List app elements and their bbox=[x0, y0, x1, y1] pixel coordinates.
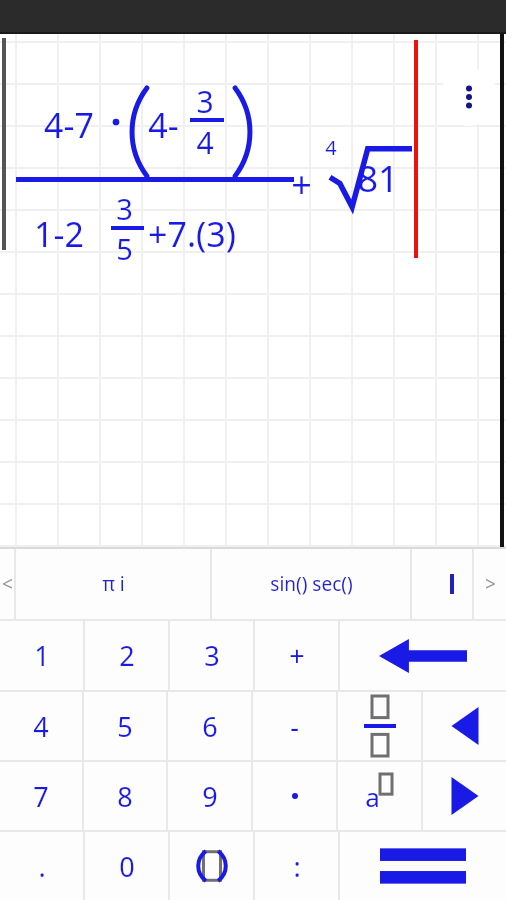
staticText: 7 bbox=[33, 778, 49, 815]
button[interactable]: Scroll left bbox=[0, 549, 14, 619]
staticText: 0 bbox=[119, 848, 135, 885]
staticText: 5 bbox=[116, 229, 133, 268]
button[interactable]: Move right bbox=[423, 762, 506, 830]
button[interactable]: Parentheses bbox=[170, 832, 253, 900]
staticText: 3 bbox=[116, 189, 133, 228]
staticText: 3 bbox=[204, 637, 220, 674]
staticText: a bbox=[365, 779, 380, 814]
button[interactable]: 6 bbox=[168, 692, 251, 760]
staticText: 5 bbox=[117, 708, 133, 745]
staticText: 1 bbox=[34, 637, 50, 674]
staticText: 4 bbox=[325, 134, 337, 161]
staticText: 3 bbox=[196, 81, 214, 122]
button[interactable]: 5 bbox=[84, 692, 166, 760]
button[interactable]: : bbox=[255, 832, 338, 900]
staticText: : bbox=[293, 848, 301, 885]
staticText: sin() sec() bbox=[270, 571, 353, 597]
button[interactable]: Power bbox=[338, 762, 421, 830]
button[interactable]: Fraction bbox=[338, 692, 421, 760]
staticText: 6 bbox=[202, 708, 218, 745]
staticText: 81 bbox=[357, 154, 399, 203]
button[interactable]: Move left bbox=[423, 692, 506, 760]
staticText: 8 bbox=[117, 778, 133, 815]
staticText: + bbox=[289, 637, 305, 674]
button[interactable]: Equals bbox=[340, 832, 506, 900]
button[interactable]: - bbox=[253, 692, 336, 760]
button[interactable]: Absolute value bbox=[412, 549, 472, 619]
button[interactable]: 4 bbox=[0, 692, 82, 760]
staticText: < bbox=[2, 571, 13, 597]
button[interactable]: 9 bbox=[168, 762, 251, 830]
button[interactable]: More options bbox=[440, 68, 498, 126]
button[interactable]: 8 bbox=[84, 762, 166, 830]
button[interactable]: Backspace bbox=[340, 621, 506, 690]
staticText: π i bbox=[102, 571, 125, 597]
staticText: 4 bbox=[33, 708, 49, 745]
staticText: 2 bbox=[119, 637, 135, 674]
staticText: 4 bbox=[196, 122, 214, 163]
staticText: 9 bbox=[202, 778, 218, 815]
button[interactable]: 2 bbox=[85, 621, 168, 690]
staticText: - bbox=[290, 708, 299, 745]
button[interactable]: 7 bbox=[0, 762, 82, 830]
staticText: + bbox=[291, 160, 312, 209]
button[interactable]: 0 bbox=[85, 832, 168, 900]
staticText: 4- bbox=[148, 102, 179, 148]
button[interactable]: 3 bbox=[170, 621, 253, 690]
staticText: 1-2 bbox=[34, 211, 84, 257]
staticText: > bbox=[485, 571, 496, 597]
button[interactable]: sin() sec() bbox=[212, 549, 410, 619]
button[interactable]: π i bbox=[16, 549, 210, 619]
button[interactable]: 1 bbox=[0, 621, 83, 690]
button[interactable]: . bbox=[0, 832, 83, 900]
staticText: . bbox=[38, 848, 46, 885]
button[interactable] bbox=[253, 762, 336, 830]
staticText: 4-7 bbox=[44, 102, 94, 148]
button[interactable]: + bbox=[255, 621, 338, 690]
staticText: +7.(3) bbox=[148, 211, 236, 257]
button[interactable]: Scroll right bbox=[474, 549, 506, 619]
